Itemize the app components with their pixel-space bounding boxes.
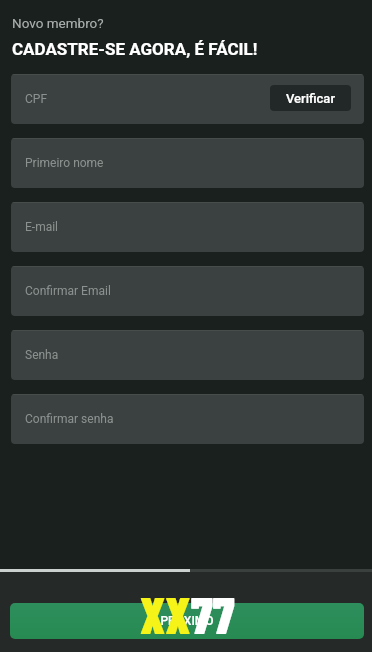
staticText: Verificar <box>286 91 335 106</box>
staticText: Confirmar senha <box>25 412 114 426</box>
staticText: Novo membro? <box>12 15 104 31</box>
staticText: CPF <box>25 92 48 106</box>
button[interactable]: CPF <box>11 74 364 124</box>
button[interactable]: Confirmar senha <box>11 394 364 444</box>
staticText: 77 <box>191 584 235 644</box>
staticText: PRÓXIMO <box>160 614 214 628</box>
staticText: CADASTRE-SE AGORA, É FÁCIL! <box>12 39 258 59</box>
button[interactable]: Verificar <box>270 85 351 111</box>
staticText: XX <box>140 584 191 644</box>
button[interactable]: PRÓXIMO <box>10 603 364 639</box>
staticText: Confirmar Email <box>25 284 111 298</box>
staticText: Primeiro nome <box>25 156 104 170</box>
staticText: E-mail <box>25 220 59 234</box>
button[interactable]: Primeiro nome <box>11 138 364 188</box>
staticText: Senha <box>25 348 59 362</box>
button[interactable]: Confirmar Email <box>11 266 364 316</box>
button[interactable]: E-mail <box>11 202 364 252</box>
button[interactable]: Senha <box>11 330 364 380</box>
